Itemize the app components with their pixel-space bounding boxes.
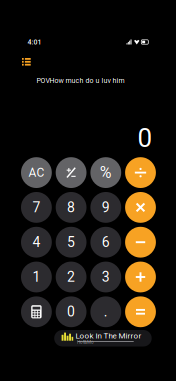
button[interactable]: Add [125, 262, 156, 292]
staticText: 1 [32, 269, 40, 285]
staticText: 0 [67, 304, 75, 320]
button[interactable]: Look In The Mirror [54, 330, 152, 346]
button[interactable]: 2 [56, 262, 86, 292]
button[interactable]: AC [21, 157, 52, 188]
button[interactable]: 1 [21, 262, 52, 292]
button[interactable]: 3 [90, 262, 121, 292]
staticText: AC [28, 166, 44, 180]
button[interactable]: 4 [21, 227, 52, 258]
button[interactable]: Plus minus [56, 157, 86, 188]
staticText: 7 [32, 199, 40, 216]
staticText: 4 [32, 234, 40, 250]
staticText: 2 [67, 269, 75, 285]
button[interactable]: 7 [21, 192, 52, 223]
staticText: . [104, 304, 108, 320]
button[interactable]: Scientific [21, 296, 52, 327]
button[interactable]: 5 [56, 227, 86, 258]
button[interactable]: Multiply [125, 192, 156, 223]
staticText: Look In The Mirror [75, 331, 141, 341]
button[interactable]: 0 [56, 296, 86, 327]
button[interactable]: History [18, 54, 35, 70]
button[interactable]: . [90, 296, 121, 327]
staticText: 0 [137, 123, 152, 153]
staticText: Hot&Mo [77, 340, 94, 345]
button[interactable]: Divide [125, 157, 156, 188]
button[interactable]: 6 [90, 227, 121, 258]
button[interactable]: 8 [56, 192, 86, 223]
button[interactable]: 9 [90, 192, 121, 223]
staticText: 6 [102, 234, 110, 250]
staticText: % [100, 163, 112, 182]
staticText: POVHow much do u luv him [36, 77, 124, 85]
button[interactable]: Subtract [125, 227, 156, 258]
staticText: 3 [102, 269, 110, 285]
staticText: 5 [67, 234, 75, 250]
button[interactable]: Equals [125, 296, 156, 327]
button[interactable]: % [90, 157, 121, 188]
staticText: 9 [102, 199, 110, 216]
staticText: 4:01 [27, 38, 41, 46]
staticText: 8 [67, 199, 75, 216]
